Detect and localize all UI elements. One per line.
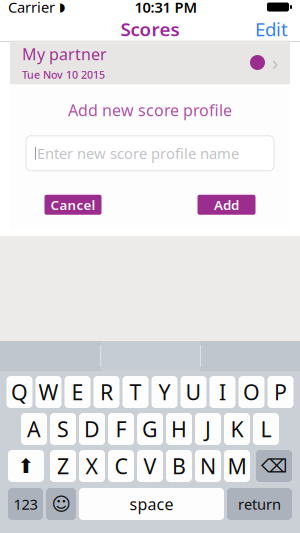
staticText: Carrier (8, 0, 55, 17)
button[interactable]: F (108, 413, 134, 445)
staticText: S (57, 415, 69, 443)
staticText: ⌫ (261, 455, 287, 477)
staticText: V (143, 452, 156, 480)
button[interactable]: K (224, 413, 250, 445)
button[interactable]: Y (151, 376, 177, 408)
button[interactable]: J (195, 413, 221, 445)
staticText: Add (214, 196, 239, 214)
staticText: ◗ (59, 0, 65, 14)
button[interactable]: Numbers (8, 488, 43, 520)
staticText: › (272, 49, 278, 76)
staticText: I (219, 378, 226, 406)
button[interactable]: W (35, 376, 61, 408)
staticText: return (238, 494, 281, 514)
button[interactable]: M (224, 450, 250, 482)
staticText: Edit (255, 17, 288, 41)
staticText: Z (57, 452, 69, 480)
button[interactable]: space (79, 488, 224, 520)
button[interactable]: G (137, 413, 163, 445)
staticText: A (27, 415, 41, 443)
staticText: X (85, 452, 98, 480)
staticText: W (38, 378, 58, 406)
button[interactable]: R (93, 376, 119, 408)
button[interactable]: C (108, 450, 134, 482)
button[interactable]: N (195, 450, 221, 482)
button[interactable]: X (79, 450, 105, 482)
staticText: ⬆ (17, 455, 34, 477)
staticText: Add new score profile (68, 99, 232, 121)
staticText: F (115, 415, 126, 443)
staticText: Q (11, 378, 28, 406)
staticText: G (142, 415, 158, 443)
staticText: J (205, 415, 211, 443)
staticText: L (260, 415, 271, 443)
staticText: B (172, 452, 186, 480)
staticText: H (171, 415, 187, 443)
staticText: K (230, 415, 243, 443)
staticText (55, 0, 59, 17)
button[interactable]: Return (227, 488, 292, 520)
staticText: Y (158, 378, 170, 406)
button[interactable]: S (50, 413, 76, 445)
button[interactable]: Delete (256, 450, 292, 482)
staticText: N (200, 452, 216, 480)
staticText: M (227, 452, 246, 480)
button[interactable]: A (21, 413, 47, 445)
button[interactable]: B (166, 450, 192, 482)
button[interactable]: Q (6, 376, 32, 408)
staticText: T (129, 378, 141, 406)
button[interactable]: Add (197, 195, 255, 215)
button[interactable]: Cancel (44, 195, 101, 215)
button[interactable]: T (122, 376, 148, 408)
staticText: ☺ (51, 493, 70, 515)
button[interactable]: U (180, 376, 206, 408)
staticText: O (243, 378, 260, 406)
staticText: Tue Nov 10 2015 (22, 67, 105, 82)
staticText: 10:31 PM (134, 0, 197, 17)
button[interactable]: H (166, 413, 192, 445)
staticText: P (274, 378, 287, 406)
staticText: My partner (22, 43, 107, 64)
staticText: Cancel (50, 196, 95, 214)
staticText: Enter new score profile name (37, 143, 239, 163)
button[interactable]: Emoji (46, 488, 76, 520)
button[interactable]: Z (50, 450, 76, 482)
button[interactable]: L (253, 413, 279, 445)
button[interactable]: Edit (247, 13, 296, 45)
staticText: U (185, 378, 201, 406)
button[interactable]: O (238, 376, 264, 408)
staticText: Scores (120, 17, 179, 41)
staticText: R (100, 378, 113, 406)
button[interactable]: E (64, 376, 90, 408)
button[interactable]: Shift (8, 450, 44, 482)
button[interactable]: P (267, 376, 293, 408)
staticText: D (84, 415, 100, 443)
staticText: E (71, 378, 83, 406)
staticText: C (114, 452, 127, 480)
button[interactable]: D (79, 413, 105, 445)
staticText: space (129, 493, 173, 515)
button[interactable]: V (137, 450, 163, 482)
button[interactable]: I (209, 376, 235, 408)
staticText: 123 (13, 494, 37, 514)
button[interactable]: My partner (10, 40, 290, 84)
